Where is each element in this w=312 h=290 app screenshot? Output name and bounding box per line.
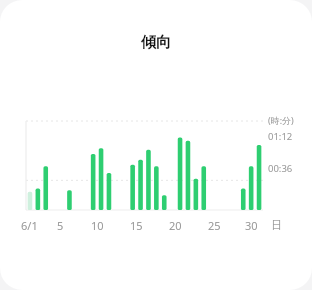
staticText: 10 bbox=[91, 218, 104, 233]
other: Daily trend bar chart bbox=[0, 0, 312, 290]
staticText: 00:36 bbox=[268, 162, 293, 175]
staticText: 傾向 bbox=[141, 33, 171, 52]
staticText: 日 bbox=[271, 218, 282, 232]
staticText: 5 bbox=[57, 218, 64, 233]
staticText: 15 bbox=[130, 218, 143, 233]
staticText: (時:分) bbox=[268, 114, 294, 126]
staticText: 01:12 bbox=[268, 130, 293, 143]
staticText: 6/1 bbox=[21, 218, 38, 233]
staticText: 30 bbox=[245, 218, 258, 233]
staticText: 25 bbox=[208, 218, 221, 233]
button[interactable]: 傾向 bbox=[0, 0, 312, 290]
staticText: 20 bbox=[169, 218, 182, 233]
